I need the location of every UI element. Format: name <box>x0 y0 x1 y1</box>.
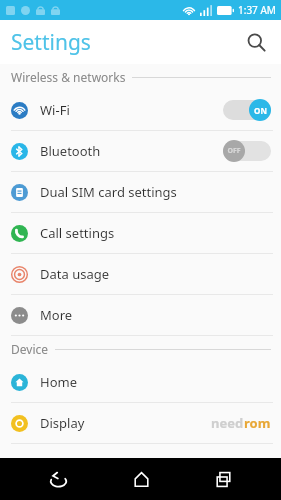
staticText: Dual SIM card settings <box>40 183 177 201</box>
staticText: Home <box>40 373 77 391</box>
button[interactable]: Wi-Fi <box>0 90 281 130</box>
staticText: Settings <box>11 28 91 57</box>
button[interactable]: Dual SIM card settings <box>0 172 281 212</box>
staticText: rom <box>244 414 271 432</box>
button[interactable]: Home <box>117 458 165 500</box>
staticText: More <box>40 306 73 324</box>
button[interactable]: Back <box>34 458 82 500</box>
button[interactable]: Bluetooth <box>0 131 281 171</box>
button[interactable]: Display <box>0 403 281 443</box>
button[interactable]: Wi-Fi toggle on <box>223 99 271 121</box>
staticText: 1:37 AM <box>238 3 276 17</box>
staticText: Device <box>11 341 49 357</box>
staticText: need <box>211 414 244 432</box>
staticText: Wireless & networks <box>11 69 126 85</box>
button[interactable]: More <box>0 295 281 335</box>
staticText: ON <box>254 105 267 116</box>
button[interactable]: Search <box>239 25 273 59</box>
staticText: Display <box>40 414 85 432</box>
staticText: Wi-Fi <box>40 101 70 119</box>
button[interactable]: Call settings <box>0 213 281 253</box>
button[interactable]: Data usage <box>0 254 281 294</box>
staticText: OFF <box>227 146 241 156</box>
staticText: Data usage <box>40 265 110 283</box>
staticText: Call settings <box>40 224 115 242</box>
button[interactable]: Home <box>0 362 281 402</box>
staticText: Bluetooth <box>40 142 101 160</box>
button[interactable]: Recent apps <box>199 458 247 500</box>
button[interactable]: Bluetooth toggle off <box>223 140 271 162</box>
